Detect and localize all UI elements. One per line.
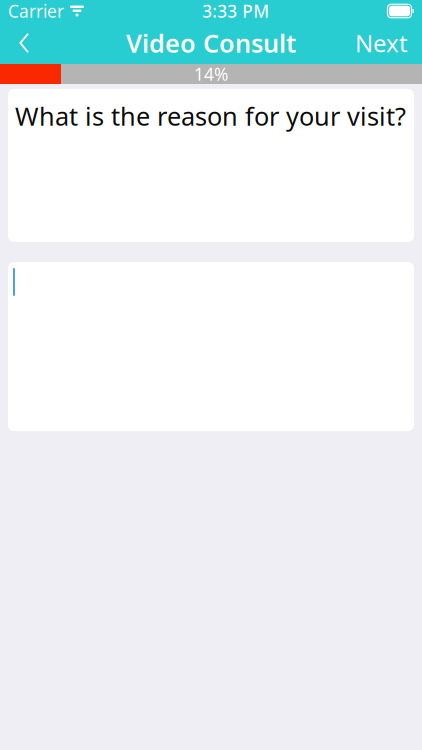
staticText: Carrier xyxy=(8,0,64,22)
staticText: Next xyxy=(355,27,408,59)
staticText: Video Consult xyxy=(126,26,296,60)
staticText: 14% xyxy=(194,62,228,85)
button[interactable]: Answer text field xyxy=(8,262,414,431)
staticText: What is the reason for your visit? xyxy=(15,99,406,133)
button[interactable]: Back xyxy=(0,22,48,64)
staticText: 3:33 PM xyxy=(202,0,269,22)
button[interactable]: Next xyxy=(341,22,422,64)
